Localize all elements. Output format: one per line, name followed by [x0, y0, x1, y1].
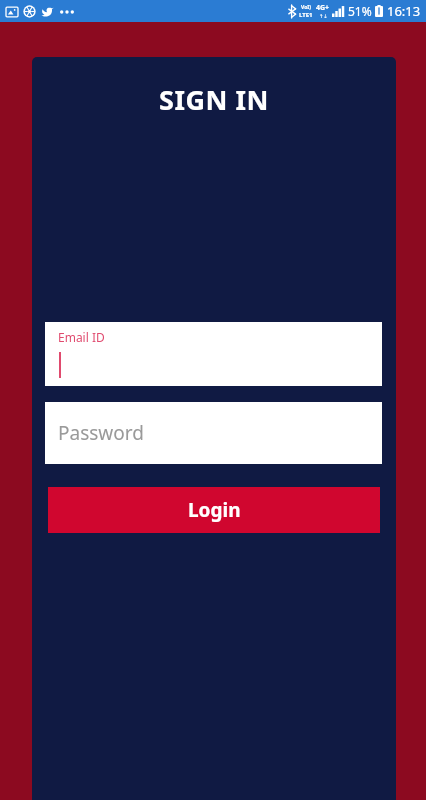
staticText: 4G+ [316, 3, 330, 13]
staticText: VoI) [301, 4, 311, 11]
button[interactable]: Email ID [45, 322, 382, 386]
button[interactable]: Password [45, 402, 382, 464]
button[interactable]: Login [48, 487, 380, 533]
staticText: 51% [348, 3, 372, 19]
staticText: 16:13 [387, 2, 421, 20]
staticText: SIGN IN [32, 81, 396, 118]
staticText: Login [188, 497, 241, 523]
staticText: Password [58, 420, 144, 446]
staticText: Email ID [58, 329, 105, 345]
staticText: LTE1 [299, 11, 313, 19]
staticText: ↑↓ [319, 13, 328, 19]
